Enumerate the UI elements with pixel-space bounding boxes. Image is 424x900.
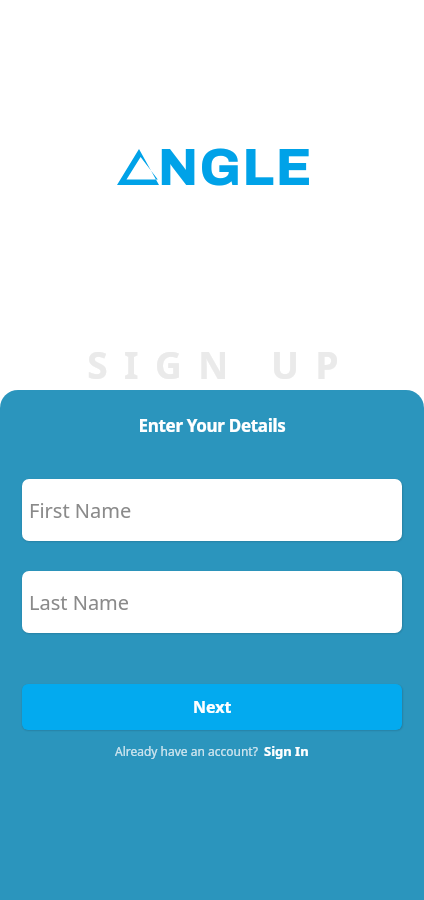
staticText: NGLE	[158, 140, 313, 195]
staticText: Next	[193, 696, 232, 718]
staticText: SIGN UP	[9, 339, 424, 389]
staticText: Enter Your Details	[0, 414, 424, 437]
staticText: Sign In	[264, 742, 309, 760]
staticText: Last Name	[29, 589, 130, 616]
staticText: Already have an account?	[115, 743, 258, 759]
button[interactable]: First Name	[22, 479, 402, 541]
button[interactable]: Sign In	[264, 742, 309, 760]
button[interactable]: Last Name	[22, 571, 402, 633]
staticText: First Name	[29, 497, 132, 524]
button[interactable]: Next	[22, 684, 402, 730]
other: Angle logo	[114, 136, 317, 191]
